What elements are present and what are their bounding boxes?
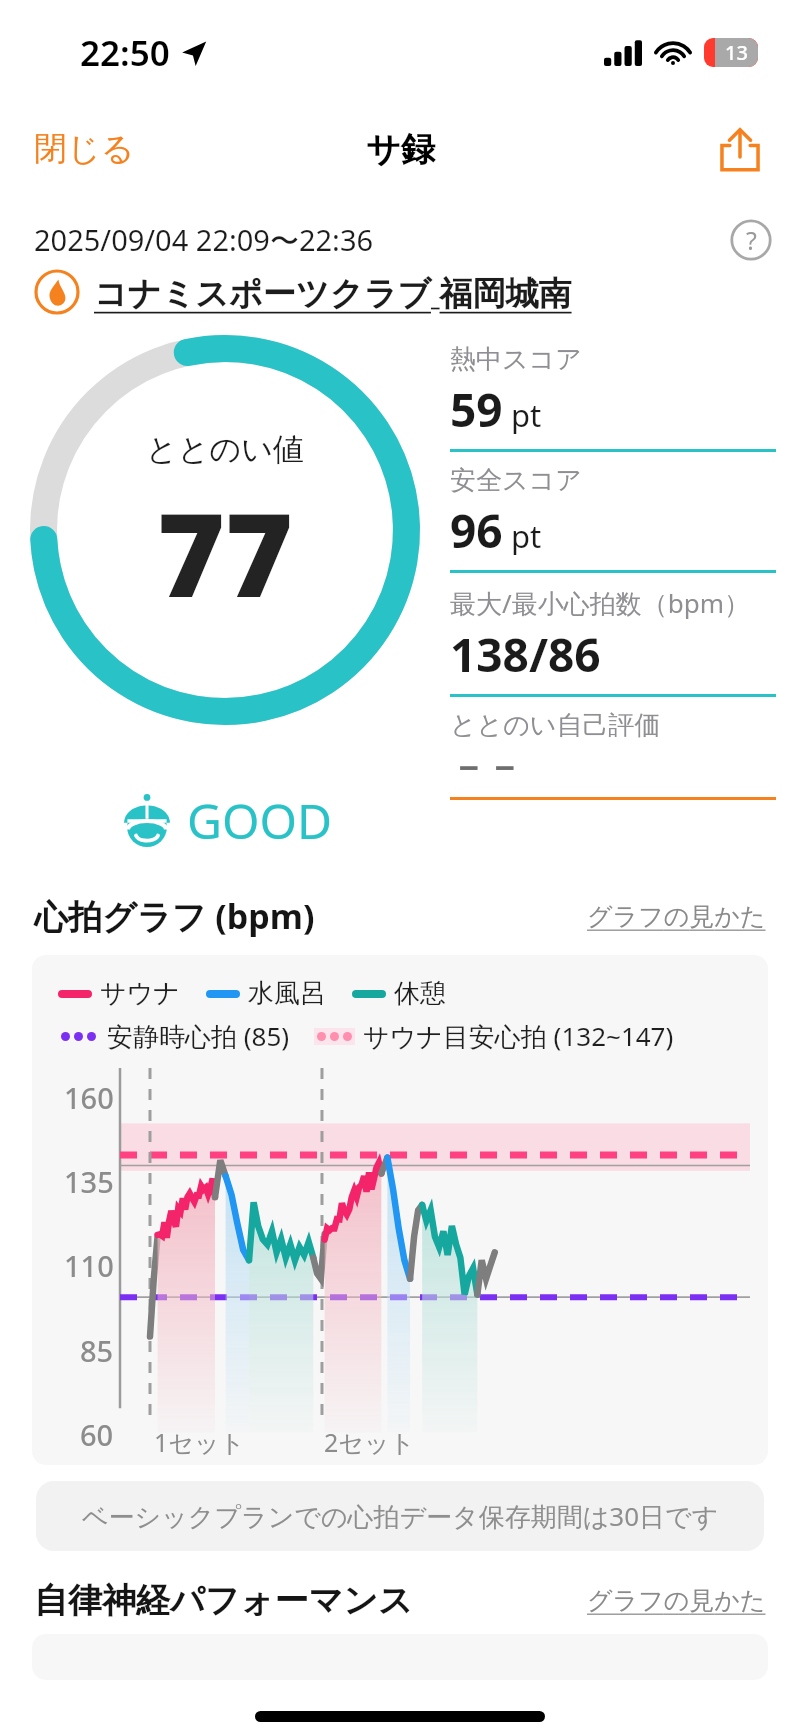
staticText: pt <box>511 515 542 557</box>
button[interactable]: 安全スコア <box>450 452 776 573</box>
staticText: 最大/最小心拍数（bpm） <box>450 585 750 621</box>
staticText: 22:50 <box>80 29 170 77</box>
staticText: 閉じる <box>34 128 135 170</box>
staticText: サ録 <box>366 128 435 171</box>
button[interactable]: 熱中スコア <box>450 331 776 452</box>
staticText: 安全スコア <box>450 464 582 497</box>
staticText: サウナ目安心拍 (132~147) <box>363 1018 674 1054</box>
staticText: 安静時心拍 (85) <box>107 1018 290 1054</box>
staticText: ととのい値 <box>146 430 304 469</box>
staticText: ベーシックプランでの心拍データ保存期間は30日です <box>82 1498 719 1534</box>
staticText: 2セット <box>324 1425 416 1459</box>
staticText: 2025/09/04 22:09〜22:36 <box>34 220 374 260</box>
staticText: 77 <box>157 473 293 631</box>
staticText: グラフの見かた <box>587 1585 766 1616</box>
button[interactable]: グラフの見かた <box>587 901 766 932</box>
staticText: 85 <box>80 1331 114 1370</box>
staticText: GOOD <box>187 788 332 853</box>
staticText: グラフの見かた <box>587 901 766 932</box>
button[interactable]: ベーシックプランでの心拍データ保存期間は30日です <box>36 1481 764 1551</box>
staticText: コナミスポーツクラブ 福岡城南 <box>94 270 572 315</box>
staticText: 休憩 <box>394 977 446 1010</box>
staticText: ととのい自己評価 <box>450 709 661 742</box>
button[interactable]: グラフの見かた <box>587 1585 766 1616</box>
staticText: 138/86 <box>450 623 601 686</box>
staticText: 96 <box>450 499 503 562</box>
staticText: pt <box>511 394 542 436</box>
staticText: 心拍グラフ (bpm) <box>34 893 315 939</box>
button[interactable]: 閉じる <box>16 116 153 182</box>
staticText: 自律神経パフォーマンス <box>34 1579 413 1622</box>
staticText: 110 <box>64 1246 114 1285</box>
staticText: 熱中スコア <box>450 343 582 376</box>
staticText: 60 <box>80 1415 114 1454</box>
staticText: サウナ <box>100 977 180 1010</box>
button[interactable]: Help <box>730 219 772 261</box>
staticText: －－ <box>450 744 522 789</box>
staticText: 13 <box>725 39 748 66</box>
button[interactable]: ととのい自己評価 <box>450 697 776 800</box>
button[interactable]: 最大/最小心拍数（bpm） <box>450 573 776 697</box>
staticText: 160 <box>64 1078 114 1117</box>
button[interactable]: コナミスポーツクラブ 福岡城南 <box>34 269 766 315</box>
staticText: 水風呂 <box>248 977 326 1010</box>
button[interactable]: Share <box>708 117 772 181</box>
staticText: 1セット <box>154 1425 246 1459</box>
staticText: ? <box>746 223 757 257</box>
staticText: 135 <box>64 1162 114 1201</box>
staticText: 59 <box>450 378 503 441</box>
